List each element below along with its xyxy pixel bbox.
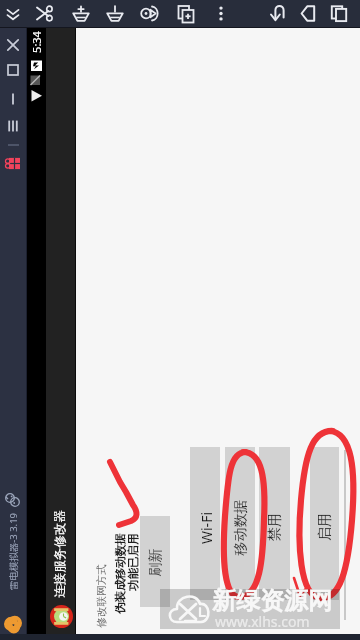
- button[interactable]: App icon: [50, 605, 73, 628]
- staticText: 新绿资源网: [212, 586, 332, 616]
- button[interactable]: Menu: [1, 115, 25, 137]
- button[interactable]: [225, 447, 255, 600]
- button[interactable]: [259, 447, 290, 600]
- button[interactable]: Screenshot: [31, 1, 57, 26]
- button[interactable]: Collapse: [0, 1, 26, 26]
- button[interactable]: [190, 447, 220, 600]
- staticText: 伪装成移动数据: [112, 533, 126, 614]
- button[interactable]: More options: [208, 1, 234, 26]
- button[interactable]: Volume up: [68, 1, 94, 26]
- button[interactable]: Shared folder: [4, 490, 22, 509]
- button[interactable]: [310, 447, 339, 600]
- button[interactable]: Close: [1, 34, 25, 56]
- button[interactable]: Recent apps: [326, 1, 352, 26]
- button[interactable]: LDPlayer: [5, 616, 21, 632]
- button[interactable]: Home: [296, 1, 322, 26]
- staticText: 禁用: [266, 513, 284, 541]
- staticText: 刷新: [146, 548, 164, 576]
- staticText: 启用: [316, 513, 334, 541]
- staticText: Wi-Fi: [196, 511, 215, 544]
- button[interactable]: Maximise: [1, 59, 25, 81]
- button[interactable]: Back: [266, 1, 292, 26]
- staticText: 5:34: [29, 31, 44, 53]
- button[interactable]: Minimise: [1, 88, 25, 110]
- button[interactable]: Gift: [1, 152, 25, 174]
- staticText: 雷电模拟器-3 3.19: [7, 513, 20, 591]
- button[interactable]: Volume down: [102, 1, 128, 26]
- staticText: 功能已启用: [125, 533, 139, 591]
- staticText: 修改联网方式: [94, 564, 107, 627]
- button[interactable]: [140, 516, 170, 607]
- staticText: 连接服务修改器: [52, 510, 68, 598]
- staticText: 移动数据: [231, 499, 249, 555]
- button[interactable]: New instance: [173, 1, 199, 26]
- button[interactable]: Shake: [137, 1, 163, 26]
- staticText: www.xlhs.com: [215, 612, 310, 631]
